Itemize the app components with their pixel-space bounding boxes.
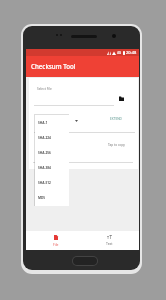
button[interactable]: SHA-512 — [35, 175, 69, 190]
button[interactable]: EXTEND — [110, 117, 122, 121]
staticText: SHA-1 — [38, 121, 48, 125]
staticText: Checksum Tool — [31, 62, 76, 70]
staticText: 4G — [117, 51, 122, 55]
staticText: EXTEND — [110, 117, 122, 121]
button[interactable]: Browse files — [116, 93, 126, 103]
button[interactable]: SHA-1 — [35, 115, 69, 130]
staticText: 20:48 — [126, 50, 137, 55]
staticText: SHA-512 — [38, 181, 51, 185]
button[interactable]: SHA-256 — [35, 145, 69, 160]
button[interactable]: MD5 — [35, 190, 69, 205]
button[interactable]: Text — [95, 231, 123, 250]
staticText: Tap to copy — [108, 143, 125, 147]
staticText: Text — [106, 241, 113, 246]
staticText: SHA-224 — [38, 136, 51, 140]
button[interactable]: SHA-384 — [35, 160, 69, 175]
staticText: MD5 — [38, 196, 46, 200]
button[interactable]: SHA-224 — [35, 130, 69, 145]
button[interactable]: File — [42, 231, 70, 250]
staticText: SHA-256 — [38, 151, 51, 155]
staticText: Select File — [37, 87, 52, 91]
staticText: SHA-384 — [38, 166, 51, 170]
staticText: File — [53, 242, 59, 247]
